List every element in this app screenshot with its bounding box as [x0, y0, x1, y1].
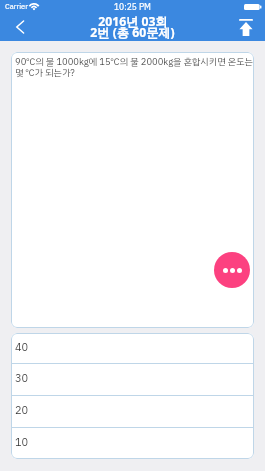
button[interactable]: Share — [233, 14, 259, 40]
button[interactable]: More options — [214, 252, 250, 288]
staticText: 40 — [15, 339, 29, 356]
staticText: 2016년 03회 — [98, 13, 168, 30]
button[interactable]: 40 — [11, 333, 254, 363]
staticText: 10 — [15, 434, 29, 451]
staticText: 10:25 PM — [114, 1, 151, 14]
staticText: 30 — [15, 370, 29, 387]
staticText: 20 — [15, 402, 29, 419]
button[interactable]: 30 — [11, 364, 254, 395]
button[interactable]: 20 — [11, 396, 254, 427]
staticText: 2번 (총 60문제) — [90, 24, 175, 41]
button[interactable]: 10 — [11, 428, 254, 459]
button[interactable]: Back — [7, 14, 33, 40]
staticText: Carrier — [5, 1, 28, 12]
staticText: 90℃의 물 1000kg에 15℃의 물 2000kg을 혼합시키면 온도는 … — [15, 55, 253, 80]
